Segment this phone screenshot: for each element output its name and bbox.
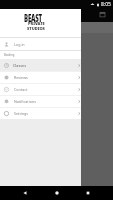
button[interactable]: Settings (0, 108, 81, 119)
button[interactable]: Reviews (0, 72, 81, 83)
staticText: Booking (4, 53, 15, 57)
button[interactable]: Classes (0, 59, 81, 71)
staticText: Contact (14, 87, 28, 92)
button[interactable]: Calendar (99, 11, 106, 18)
button[interactable]: Home (47, 186, 66, 200)
staticText: Reviews (14, 75, 28, 80)
button[interactable]: Contact (0, 84, 81, 95)
staticText: STUDIOS (27, 26, 45, 31)
staticText: BEAST (24, 10, 42, 24)
staticText: Settings (14, 111, 29, 116)
staticText: Classes (13, 63, 26, 68)
staticText: Log in (14, 42, 25, 47)
staticText: 8:05 (101, 1, 111, 8)
staticText: PRIVATE (28, 22, 45, 26)
button[interactable]: Notifications (0, 96, 81, 107)
button[interactable]: Log in (0, 38, 81, 50)
button[interactable]: Recents (78, 186, 97, 200)
staticText: Notifications (14, 99, 36, 104)
button[interactable]: Back (15, 186, 34, 200)
